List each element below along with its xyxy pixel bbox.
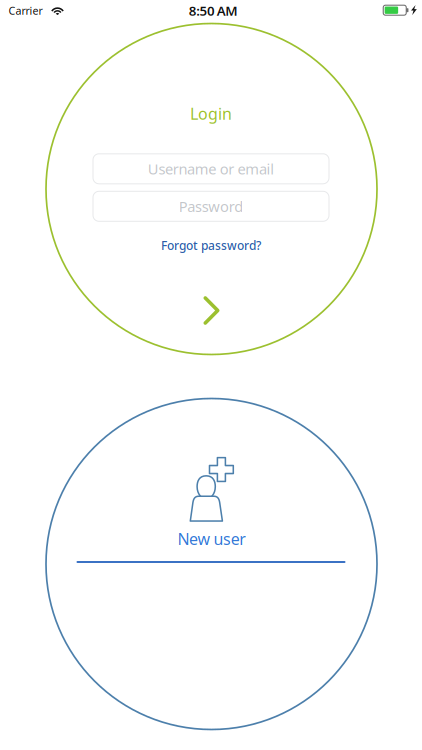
button[interactable]: Log in <box>203 296 220 325</box>
staticText: Username or email <box>148 159 274 179</box>
button[interactable]: Username or email <box>93 154 329 184</box>
button[interactable]: New user <box>177 458 246 549</box>
button[interactable]: Forgot password? <box>161 237 261 253</box>
staticText: 8:50 AM <box>189 2 237 19</box>
staticText: Forgot password? <box>161 237 261 253</box>
staticText: Login <box>190 103 232 124</box>
staticText: Password <box>179 197 243 216</box>
button[interactable]: Password <box>93 191 329 221</box>
staticText: Carrier <box>8 3 42 18</box>
staticText: New user <box>177 528 246 549</box>
